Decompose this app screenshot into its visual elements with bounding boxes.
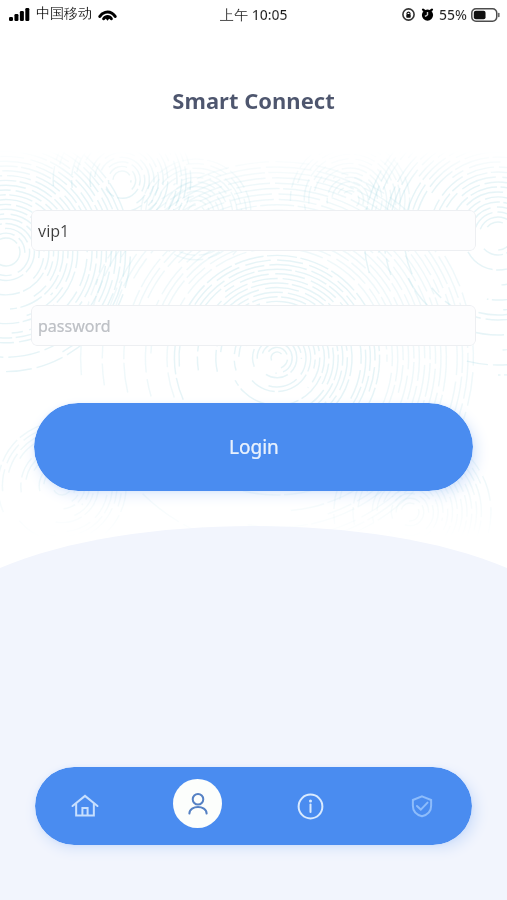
staticText: 55% bbox=[439, 5, 467, 24]
staticText: Login bbox=[229, 434, 279, 460]
button[interactable]: password bbox=[31, 305, 476, 346]
button[interactable]: Home bbox=[50, 771, 120, 841]
button[interactable]: Security bbox=[387, 771, 457, 841]
button[interactable]: Info bbox=[275, 771, 345, 841]
staticText: vip1 bbox=[38, 220, 70, 242]
staticText: 中国移动 bbox=[36, 5, 92, 23]
button[interactable]: Profile bbox=[162, 771, 232, 841]
staticText: password bbox=[38, 315, 111, 337]
button[interactable]: Login bbox=[34, 403, 473, 491]
staticText: 上午 10:05 bbox=[220, 5, 288, 24]
button[interactable]: vip1 bbox=[31, 210, 476, 251]
staticText: Smart Connect bbox=[0, 85, 507, 115]
